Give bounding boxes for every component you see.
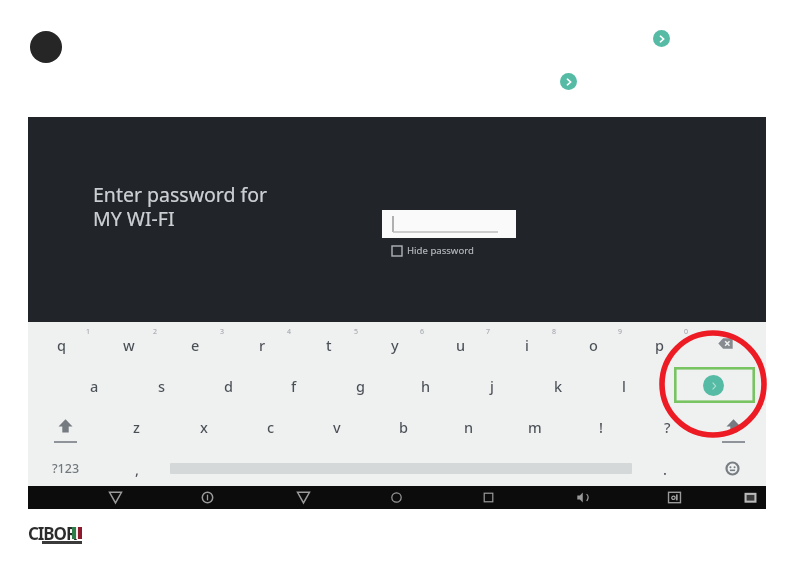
button[interactable]: 9	[560, 322, 626, 363]
staticText: r	[259, 335, 266, 355]
staticText: l	[622, 376, 626, 396]
button[interactable]: 0	[626, 322, 692, 363]
button[interactable]: s	[128, 363, 195, 404]
button[interactable]: b	[370, 404, 436, 445]
button[interactable]: Back	[280, 486, 326, 509]
staticText: 7	[486, 327, 491, 337]
staticText: h	[421, 376, 431, 396]
button[interactable]: f	[261, 363, 327, 404]
button[interactable]: 1	[28, 322, 95, 363]
button[interactable]: h	[393, 363, 459, 404]
button[interactable]: ?	[634, 404, 700, 445]
staticText: 6	[420, 327, 425, 337]
staticText: 4	[287, 327, 292, 337]
button[interactable]: x	[170, 404, 237, 445]
button[interactable]: Backspace	[692, 322, 758, 363]
staticText: v	[333, 417, 341, 437]
staticText: a	[90, 376, 99, 396]
staticText: 5	[354, 327, 359, 337]
staticText: !	[599, 417, 603, 437]
staticText: f	[291, 376, 297, 396]
button[interactable]: Volume	[559, 486, 605, 509]
staticText: e	[191, 335, 200, 355]
staticText: t	[326, 335, 332, 355]
button[interactable]: g	[327, 363, 393, 404]
staticText: Enter password for MY WI-FI	[93, 181, 268, 232]
button[interactable]: Recents	[465, 486, 511, 509]
button[interactable]: !	[568, 404, 634, 445]
button[interactable]: Screenshot	[651, 486, 697, 509]
staticText: 9	[618, 327, 623, 337]
button[interactable]: 8	[494, 322, 560, 363]
staticText: 0	[684, 327, 689, 337]
staticText: i	[525, 335, 529, 355]
button[interactable]: Hide password	[392, 244, 474, 257]
button[interactable]: 6	[362, 322, 428, 363]
button[interactable]: c	[237, 404, 304, 445]
staticText: 8	[552, 327, 557, 337]
staticText: s	[158, 376, 166, 396]
staticText: g	[356, 376, 365, 396]
button[interactable]: v	[304, 404, 370, 445]
staticText: ?	[664, 417, 671, 437]
staticText: z	[133, 417, 140, 437]
button[interactable]: l	[591, 363, 657, 404]
button[interactable]: 5	[296, 322, 362, 363]
button[interactable]: ?123	[28, 445, 104, 486]
staticText: CIBOR	[28, 522, 76, 545]
button[interactable]: Home	[373, 486, 419, 509]
button[interactable]: Shift	[28, 404, 103, 445]
button[interactable]: 4	[229, 322, 296, 363]
staticText: .	[663, 459, 667, 479]
button[interactable]: n	[436, 404, 502, 445]
button[interactable]: Rotate	[184, 486, 230, 509]
button[interactable]: k	[525, 363, 591, 404]
button[interactable]: Back	[92, 486, 138, 509]
staticText: m	[528, 417, 542, 437]
staticText: w	[123, 335, 135, 355]
button[interactable]: Shift	[700, 404, 766, 445]
button[interactable]: Enter	[657, 363, 766, 404]
staticText: x	[200, 417, 208, 437]
button[interactable]: Cibor logo	[26, 524, 86, 548]
button[interactable]: d	[195, 363, 261, 404]
button[interactable]: Emoji	[698, 445, 766, 486]
staticText: y	[391, 335, 399, 355]
button[interactable]: 7	[428, 322, 494, 363]
button[interactable]: .	[632, 445, 698, 486]
button[interactable]: j	[459, 363, 525, 404]
staticText: c	[267, 417, 275, 437]
staticText: ?123	[52, 460, 80, 477]
staticText: k	[554, 376, 563, 396]
button[interactable]: a	[61, 363, 128, 404]
button[interactable]: Next	[653, 30, 670, 47]
button[interactable]: 2	[95, 322, 162, 363]
staticText: Hide password	[407, 244, 474, 257]
button[interactable]: Next	[560, 73, 577, 90]
staticText: n	[464, 417, 474, 437]
staticText: o	[589, 335, 598, 355]
staticText: 1	[86, 327, 91, 337]
staticText: ,	[135, 459, 139, 479]
staticText: p	[655, 335, 664, 355]
button[interactable]: Space	[170, 445, 632, 486]
staticText: 2	[153, 327, 158, 337]
button[interactable]: 3	[162, 322, 229, 363]
staticText: j	[490, 376, 494, 396]
button[interactable]: Keyboard	[727, 486, 773, 509]
button[interactable]: ,	[104, 445, 170, 486]
staticText: d	[224, 376, 233, 396]
staticText: 3	[220, 327, 225, 337]
button[interactable]: m	[502, 404, 568, 445]
button[interactable]: z	[103, 404, 170, 445]
staticText: b	[399, 417, 408, 437]
staticText: u	[456, 335, 466, 355]
staticText: q	[57, 335, 66, 355]
